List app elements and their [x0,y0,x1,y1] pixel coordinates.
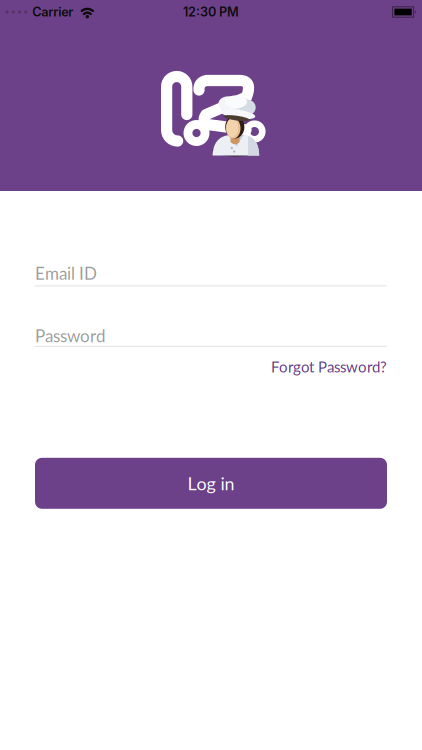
button[interactable]: Email ID [35,263,387,286]
button[interactable]: Forgot Password? [271,358,387,376]
staticText: Password [35,325,106,346]
staticText: Forgot Password? [271,358,387,376]
staticText: Log in [187,473,234,494]
staticText: 12:30 PM [183,4,239,20]
button[interactable]: Password [35,325,387,347]
staticText: Carrier [32,4,73,20]
button[interactable]: Log in [35,458,387,509]
staticText: Email ID [35,263,97,283]
